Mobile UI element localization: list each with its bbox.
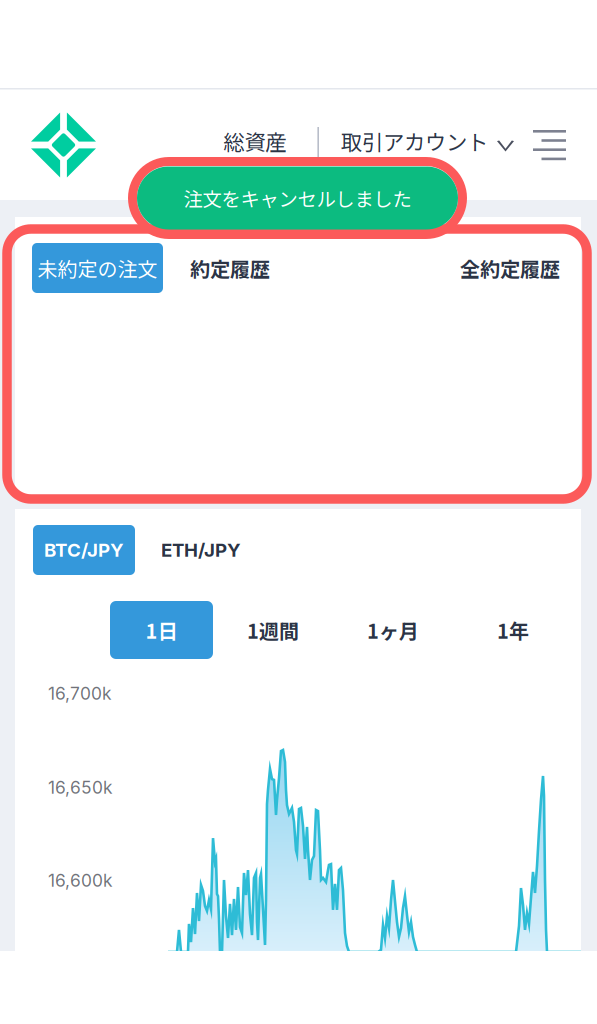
button[interactable]: 1週間 [213,601,333,659]
staticText: 未約定の注文 [37,253,157,282]
button[interactable]: BTC/JPY [33,525,135,575]
staticText: 1ヶ月 [367,615,419,644]
staticText: 注文をキャンセルしました [183,184,411,212]
staticText: 16,600k [48,870,113,891]
staticText: 総資産 [223,126,286,156]
button[interactable]: 取引アカウント [341,130,514,160]
staticText: 全約定履歴 [460,253,560,282]
staticText: 約定履歴 [190,253,270,282]
button[interactable]: 1日 [110,601,213,659]
button[interactable]: 未約定の注文 [32,243,163,293]
button[interactable]: 全約定履歴 [460,253,560,282]
button[interactable]: 約定履歴 [163,253,270,282]
staticText: ETH/JPY [161,539,241,561]
staticText: 取引アカウント [341,126,488,156]
button[interactable]: ETH/JPY [135,539,241,561]
button[interactable]: 1ヶ月 [333,601,453,659]
button[interactable]: Menu [514,129,597,160]
button[interactable]: 1年 [453,601,573,659]
staticText: 16,650k [48,777,113,798]
staticText: 16,700k [48,683,112,704]
staticText: 1年 [497,615,529,644]
staticText: 1日 [145,615,177,644]
staticText: BTC/JPY [44,539,124,561]
button[interactable]: bitFlyer home [0,112,96,177]
staticText: 1週間 [247,615,299,644]
button[interactable]: 総資産 [223,130,286,160]
